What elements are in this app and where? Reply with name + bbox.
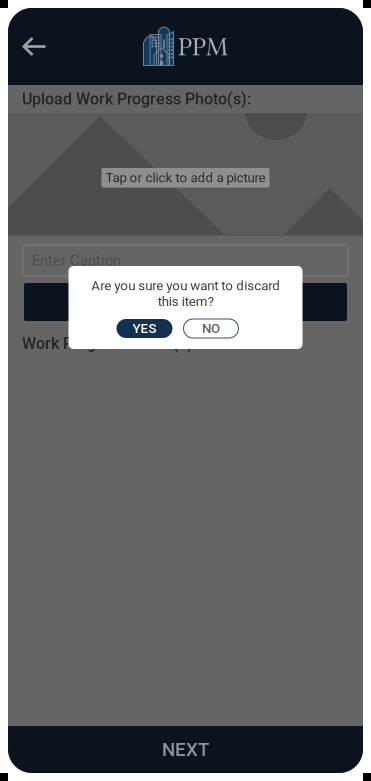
- staticText: NEXT: [162, 739, 209, 760]
- staticText: Tap or click to add a picture: [105, 170, 265, 186]
- staticText: PPM: [178, 31, 228, 62]
- staticText: Enter Caption: [32, 252, 121, 269]
- button[interactable]: YES: [116, 319, 172, 338]
- button[interactable]: Upload: [24, 283, 347, 321]
- staticText: NO: [202, 321, 220, 336]
- button[interactable]: NO: [183, 319, 238, 338]
- staticText: Upload Work Progress Photo(s):: [22, 90, 251, 108]
- button[interactable]: NEXT: [8, 726, 363, 773]
- staticText: Are you sure you want to discard this it…: [91, 278, 280, 309]
- button[interactable]: Back: [8, 23, 57, 69]
- staticText: Work Progress Photo(s):: [22, 334, 197, 353]
- staticText: YES: [132, 321, 156, 336]
- button[interactable]: Add a picture: [8, 113, 363, 236]
